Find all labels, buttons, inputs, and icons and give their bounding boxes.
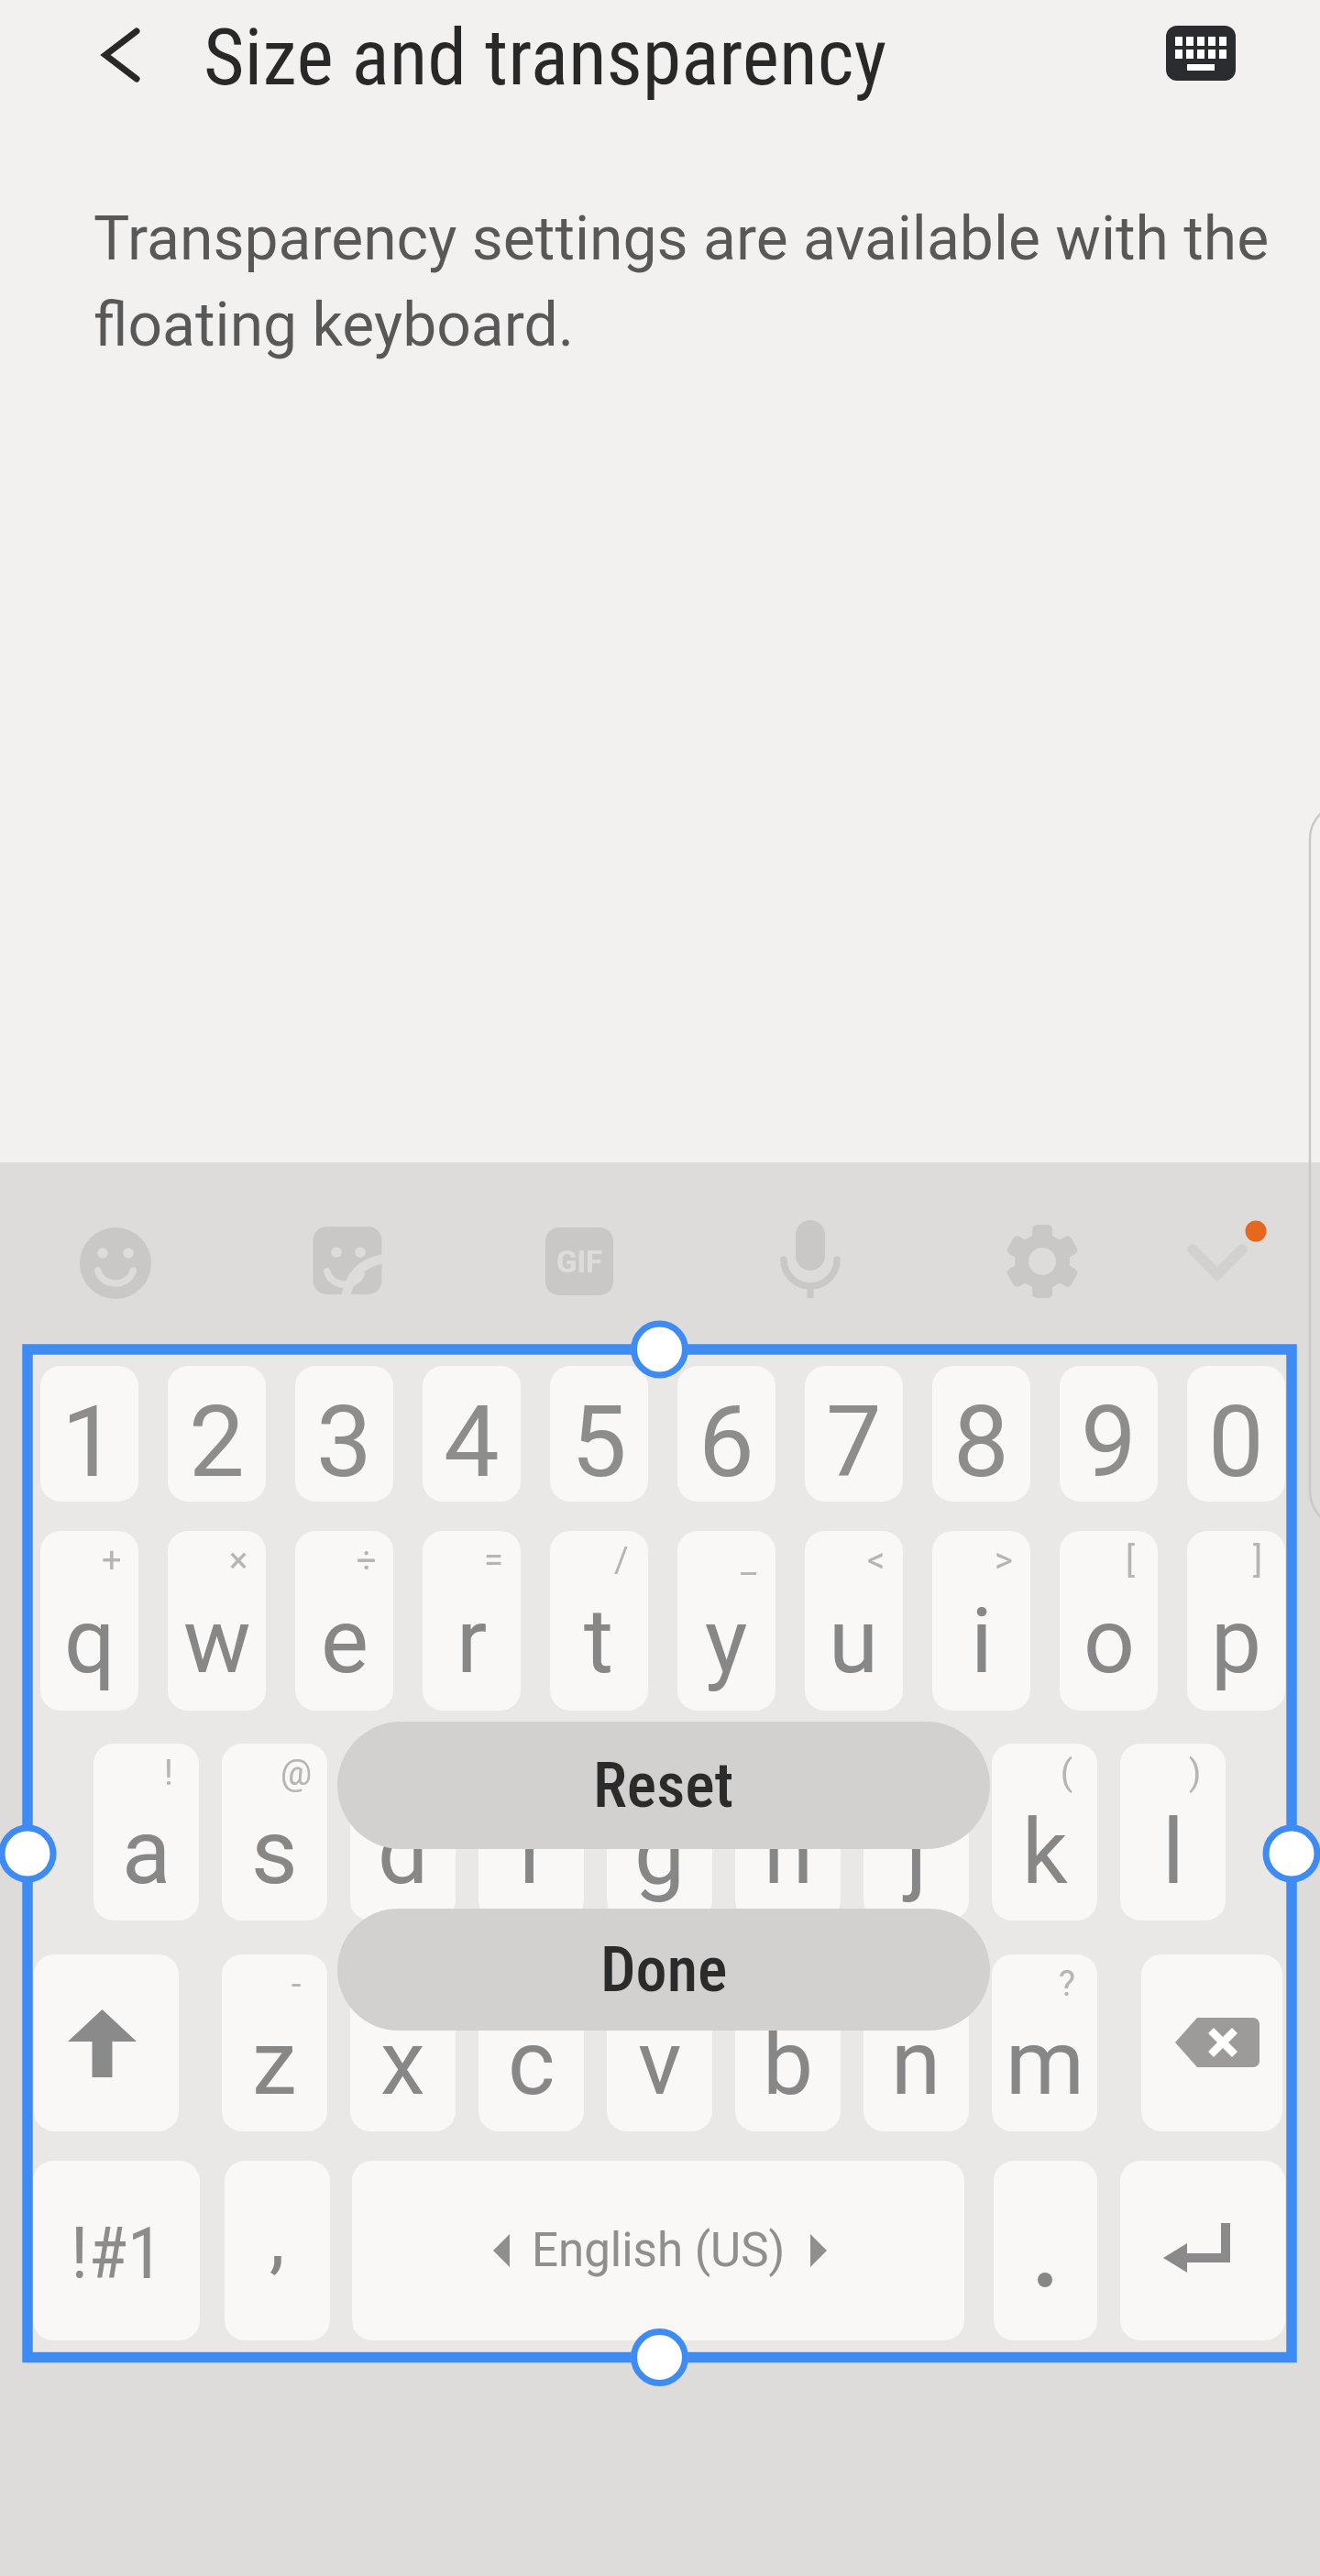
staticText: ( — [676, 1964, 688, 2005]
button[interactable]: : — [350, 1954, 456, 2131]
button[interactable]: , — [225, 2161, 330, 2340]
staticText: 7 — [826, 1384, 882, 1501]
button[interactable]: Done — [337, 1909, 990, 2031]
button[interactable]: = — [423, 1531, 521, 1711]
button[interactable]: ? — [992, 1954, 1097, 2131]
button[interactable]: ( — [992, 1744, 1097, 1921]
staticText: z — [252, 2010, 297, 2116]
staticText: !#1 — [71, 2212, 163, 2295]
staticText: 3 — [316, 1384, 372, 1501]
staticText: > — [995, 1540, 1013, 1581]
button[interactable] — [34, 1954, 179, 2131]
staticText: Reset — [593, 1749, 734, 1822]
button[interactable]: 7 — [805, 1366, 903, 1502]
button[interactable]: + — [40, 1531, 138, 1711]
button[interactable]: / — [550, 1531, 648, 1711]
staticText: r — [456, 1589, 488, 1694]
button[interactable]: ; — [478, 1954, 584, 2131]
staticText: 4 — [444, 1384, 500, 1501]
button[interactable] — [1146, 7, 1256, 99]
staticText: × — [229, 1540, 248, 1581]
staticText: v — [638, 2010, 682, 2116]
button[interactable]: 1 — [40, 1366, 138, 1502]
button[interactable]: & — [863, 1744, 969, 1921]
staticText: k — [1022, 1800, 1068, 1905]
button[interactable]: ÷ — [295, 1531, 393, 1711]
staticText: u — [829, 1589, 879, 1694]
button[interactable]: Reset — [337, 1722, 990, 1849]
staticText: n — [891, 2010, 941, 2116]
staticText: + — [102, 1540, 122, 1581]
button[interactable]: !#1 — [33, 2161, 200, 2340]
button[interactable] — [994, 1215, 1094, 1316]
staticText: @ — [280, 1753, 313, 1794]
button[interactable]: 5 — [550, 1366, 648, 1502]
staticText: o — [1083, 1589, 1135, 1694]
button[interactable]: ] — [1187, 1531, 1285, 1711]
staticText: 5 — [571, 1384, 627, 1501]
staticText: 0 — [1208, 1384, 1264, 1501]
button[interactable]: ! — [863, 1954, 969, 2131]
button[interactable] — [761, 1215, 862, 1316]
staticText: Transparency settings are available with… — [93, 204, 1270, 361]
staticText: y — [705, 1589, 748, 1694]
button[interactable]: English (US) — [352, 2161, 964, 2340]
staticText: i — [971, 1589, 993, 1694]
staticText: b — [763, 2010, 814, 2116]
staticText: j — [906, 1800, 928, 1905]
staticText: Size and transparency — [203, 11, 887, 104]
staticText: 1 — [61, 1384, 117, 1501]
staticText: q — [64, 1589, 115, 1694]
button[interactable]: @ — [222, 1744, 327, 1921]
button[interactable] — [528, 1215, 629, 1316]
staticText: e — [321, 1589, 368, 1694]
button[interactable] — [994, 2161, 1097, 2340]
button[interactable]: $ — [478, 1744, 584, 1921]
button[interactable]: 2 — [168, 1366, 266, 1502]
button[interactable]: ! — [93, 1744, 199, 1921]
button[interactable] — [64, 0, 183, 110]
button[interactable]: 3 — [295, 1366, 393, 1502]
staticText: ! — [164, 1753, 173, 1794]
button[interactable]: 9 — [1060, 1366, 1158, 1502]
staticText: 9 — [1081, 1384, 1137, 1501]
button[interactable]: ( — [607, 1954, 712, 2131]
staticText: g — [634, 1800, 686, 1905]
button[interactable]: _ — [677, 1531, 775, 1711]
staticText: m — [1006, 2010, 1084, 2116]
button[interactable]: [ — [1060, 1531, 1158, 1711]
button[interactable]: - — [222, 1954, 327, 2131]
staticText: f — [515, 1800, 547, 1905]
button[interactable] — [295, 1215, 396, 1316]
button[interactable]: × — [168, 1531, 266, 1711]
button[interactable] — [65, 1215, 166, 1316]
button[interactable] — [1169, 1215, 1270, 1316]
button[interactable]: ) — [735, 1954, 841, 2131]
staticText: ÷ — [357, 1540, 377, 1581]
staticText: 8 — [953, 1384, 1009, 1501]
staticText: t — [584, 1589, 614, 1694]
button[interactable]: > — [932, 1531, 1030, 1711]
staticText: GIF — [556, 1244, 603, 1280]
button[interactable]: 6 — [677, 1366, 775, 1502]
staticText: d — [378, 1800, 429, 1905]
button[interactable]: < — [805, 1531, 903, 1711]
staticText: l — [1162, 1800, 1184, 1905]
button[interactable] — [1120, 2161, 1285, 2340]
button[interactable]: 0 — [1187, 1366, 1285, 1502]
button[interactable]: 8 — [932, 1366, 1030, 1502]
button[interactable]: 4 — [423, 1366, 521, 1502]
staticText: / — [614, 1540, 629, 1581]
button[interactable] — [1141, 1954, 1282, 2131]
staticText: , — [269, 2193, 285, 2283]
staticText: x — [380, 2010, 425, 2116]
button[interactable]: # — [350, 1744, 456, 1921]
button[interactable]: ) — [1120, 1744, 1226, 1921]
button[interactable]: ^ — [735, 1744, 841, 1921]
staticText: Done — [600, 1933, 728, 2007]
button[interactable]: % — [607, 1744, 712, 1921]
